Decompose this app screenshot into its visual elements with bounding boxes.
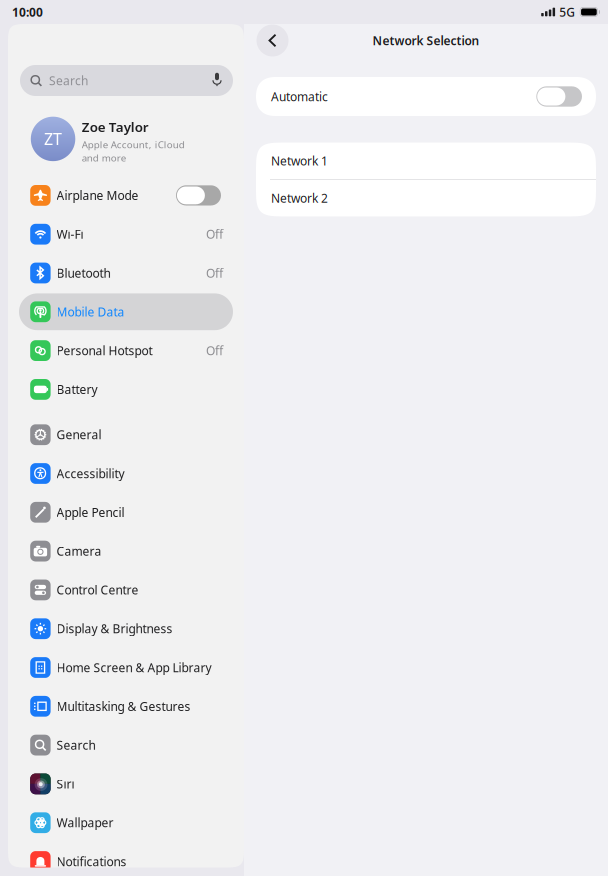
button[interactable]: Notifications <box>19 843 233 876</box>
button[interactable]: Airplane Mode <box>19 177 233 214</box>
staticText: Apple Pencil <box>57 504 125 520</box>
button[interactable]: Battery <box>19 371 233 408</box>
staticText: Bluetooth <box>57 265 111 281</box>
button[interactable]: ZT <box>8 118 244 163</box>
button[interactable]: General <box>19 416 233 453</box>
button[interactable]: Search <box>20 65 233 96</box>
staticText: Control Centre <box>57 582 139 598</box>
staticText: ZT <box>44 128 62 150</box>
staticText: Network 2 <box>271 190 328 206</box>
staticText: Battery <box>57 381 98 397</box>
staticText: Camera <box>57 543 102 559</box>
staticText: Wallpaper <box>57 814 114 831</box>
staticText: Mobile Data <box>57 304 125 320</box>
button[interactable]: Siri <box>19 765 233 802</box>
button[interactable]: Automatic <box>256 77 596 116</box>
staticText: Notifications <box>57 853 127 870</box>
staticText: Accessibility <box>57 465 125 482</box>
staticText: Search <box>57 737 96 753</box>
button[interactable]: Control Centre <box>19 571 233 608</box>
button[interactable]: Mobile Data <box>19 293 233 330</box>
button[interactable]: Multitasking & Gestures <box>19 688 233 725</box>
staticText: 5G <box>559 4 575 20</box>
button[interactable]: Back <box>256 24 288 56</box>
staticText: Automatic <box>271 88 328 105</box>
button[interactable]: Bluetooth <box>19 255 233 291</box>
staticText: Off <box>206 265 223 281</box>
button[interactable]: Network 1 <box>256 143 596 179</box>
staticText: Display & Brightness <box>57 620 173 637</box>
staticText: Home Screen & App Library <box>57 659 212 676</box>
button[interactable]: Accessibility <box>19 455 233 492</box>
button[interactable]: Personal Hotspot <box>19 332 233 369</box>
staticText: Search <box>49 72 88 89</box>
button[interactable]: Wallpaper <box>19 804 233 841</box>
button[interactable]: Home Screen & App Library <box>19 649 233 686</box>
staticText: Multitasking & Gestures <box>57 698 191 714</box>
staticText: Wi-Fi <box>57 226 84 242</box>
staticText: Siri <box>57 776 75 792</box>
staticText: Network 1 <box>271 153 328 169</box>
button[interactable]: Display & Brightness <box>19 610 233 647</box>
button[interactable]: Search <box>19 727 233 763</box>
staticText: Off <box>206 342 223 359</box>
staticText: Off <box>206 226 223 242</box>
staticText: Airplane Mode <box>57 187 139 203</box>
button[interactable]: Camera <box>19 533 233 569</box>
staticText: General <box>57 426 102 443</box>
staticText: and more <box>82 151 126 164</box>
staticText: Network Selection <box>372 32 479 49</box>
staticText: Zoe Taylor <box>82 118 149 136</box>
staticText: Personal Hotspot <box>57 342 153 359</box>
button[interactable]: Network 2 <box>256 180 596 216</box>
staticText: 10:00 <box>12 4 43 20</box>
staticText: Apple Account, iCloud <box>82 138 185 151</box>
button[interactable]: Wi-Fi <box>19 216 233 253</box>
button[interactable]: Apple Pencil <box>19 494 233 531</box>
